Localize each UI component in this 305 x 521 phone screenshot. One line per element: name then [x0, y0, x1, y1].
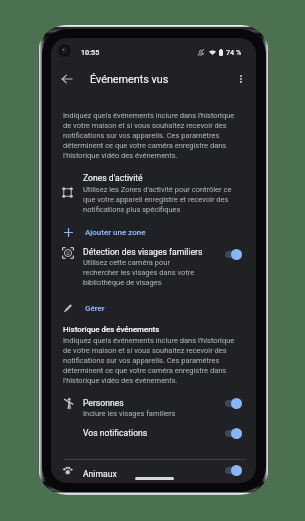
staticText: Vos notifications [83, 428, 148, 438]
button[interactable]: Ajouter une zone [59, 223, 179, 241]
button[interactable]: Toggle [223, 395, 244, 411]
staticText: Utilisez les Zones d'activité pour contr… [83, 185, 235, 214]
staticText: 10:55 [81, 48, 100, 56]
staticText: Indiquez quels événements inclure dans l… [63, 111, 239, 160]
staticText: Utilisez cette caméra pour rechercher le… [83, 258, 195, 287]
staticText: Indiquez quels événements inclure dans l… [63, 336, 239, 385]
staticText: Historique des événements [63, 325, 160, 334]
staticText: 74 % [226, 48, 242, 56]
staticText: Événements vus [90, 73, 169, 86]
button[interactable]: Back [56, 68, 78, 90]
staticText: Zones d'activité [83, 173, 143, 183]
staticText: Animaux [83, 469, 117, 479]
staticText: Détection des visages familiers [83, 247, 203, 257]
button[interactable]: Toggle [223, 425, 244, 441]
button[interactable]: Gérer [59, 299, 179, 317]
staticText: Personnes [83, 398, 124, 408]
button[interactable]: More options [230, 68, 252, 90]
staticText: Ajouter une zone [85, 228, 146, 237]
button[interactable]: Toggle [223, 462, 244, 478]
staticText: Inclure les visages familiers [83, 409, 176, 418]
staticText: Gérer [85, 304, 105, 313]
button[interactable]: Toggle [223, 246, 244, 262]
